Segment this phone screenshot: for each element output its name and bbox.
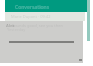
staticText: Marie Dupont · 09:42	[11, 14, 51, 19]
button[interactable]	[5, 0, 87, 12]
staticText: Conversations	[15, 4, 50, 11]
staticText: Alex	[6, 23, 15, 28]
staticText: Sounds good, see you then	[12, 23, 63, 28]
